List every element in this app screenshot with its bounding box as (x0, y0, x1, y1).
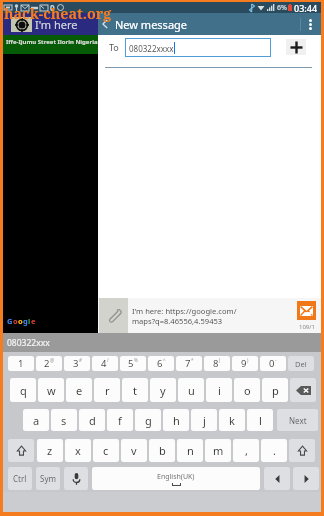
button[interactable]: 8 (204, 356, 230, 371)
button[interactable]: r (94, 378, 120, 402)
button[interactable]: English(UK) (92, 467, 260, 490)
button[interactable]: n (177, 439, 203, 462)
button[interactable]: h (163, 409, 189, 431)
staticText: G (7, 316, 13, 326)
button[interactable]: z (37, 439, 63, 462)
button[interactable]: Backspace (290, 378, 316, 402)
staticText: p (272, 383, 279, 398)
button[interactable]: o (234, 378, 260, 402)
staticText: Sym (40, 473, 56, 484)
button[interactable]: x (65, 439, 91, 462)
staticText: g (145, 413, 152, 428)
button[interactable]: Send (297, 301, 316, 320)
staticText: o (18, 316, 23, 326)
staticText: l (28, 316, 31, 326)
staticText: Del (295, 359, 307, 369)
staticText: ) (247, 357, 249, 363)
staticText: 109/1 (299, 323, 315, 331)
staticText: z (47, 443, 53, 458)
button[interactable]: 3 (64, 356, 90, 371)
staticText: 2 (44, 357, 50, 370)
button[interactable]: 1 (8, 356, 34, 371)
button[interactable]: c (93, 439, 119, 462)
staticText: - (275, 357, 277, 363)
button[interactable]: . (261, 439, 287, 462)
staticText: a (33, 413, 40, 428)
staticText: 0 (50, 2, 55, 13)
button[interactable]: s (51, 409, 77, 431)
button[interactable]: I'm here (3, 13, 98, 35)
button[interactable]: Ctrl (8, 467, 32, 490)
staticText: English(UK) (157, 472, 195, 482)
button[interactable]: Shift (8, 439, 34, 462)
staticText: maps?q=8.46556,4.59453 (132, 316, 223, 326)
staticText: , (245, 443, 248, 458)
staticText: q (20, 383, 27, 398)
button[interactable]: y (150, 378, 176, 402)
staticText: 080322xxxx (129, 43, 174, 54)
button[interactable]: b (149, 439, 175, 462)
button[interactable]: w (38, 378, 64, 402)
staticText: u (188, 383, 195, 398)
button[interactable]: q (10, 378, 36, 402)
button[interactable]: 6 (148, 356, 174, 371)
button[interactable]: , (233, 439, 259, 462)
button[interactable]: k (219, 409, 245, 431)
button[interactable]: Sym (36, 467, 60, 490)
staticText: g (23, 316, 28, 326)
staticText: 0 (269, 357, 275, 370)
staticText: f (118, 413, 122, 428)
staticText: v (131, 443, 137, 458)
staticText: e (31, 316, 36, 326)
button[interactable]: Voice input (64, 467, 88, 490)
staticText: 8 (213, 357, 219, 370)
staticText: * (191, 357, 194, 363)
button[interactable]: g (135, 409, 161, 431)
button[interactable]: l (247, 409, 273, 431)
button[interactable]: Previous (264, 467, 290, 490)
staticText: I'm here (35, 17, 78, 32)
staticText: e (76, 383, 83, 398)
staticText: To (109, 41, 119, 53)
staticText: 9 (241, 357, 247, 370)
button[interactable]: 0 (260, 356, 286, 371)
staticText: s (61, 413, 67, 428)
staticText: n (187, 443, 194, 458)
button[interactable]: 080322xxxx (125, 38, 271, 57)
button[interactable]: f (107, 409, 133, 431)
button[interactable]: m (205, 439, 231, 462)
button[interactable]: v (121, 439, 147, 462)
button[interactable]: Back (98, 13, 112, 35)
staticText: d (89, 413, 96, 428)
staticText: t (133, 383, 137, 398)
staticText: # (79, 357, 82, 363)
staticText: b (159, 443, 166, 458)
button[interactable]: i (206, 378, 232, 402)
button[interactable]: 7 (176, 356, 202, 371)
staticText: r (105, 383, 110, 398)
button[interactable]: d (79, 409, 105, 431)
staticText: . (273, 443, 276, 458)
button[interactable]: e (66, 378, 92, 402)
staticText: Iffe-Ijumu Street Ilorin Nigeria (6, 38, 98, 46)
button[interactable]: Attach (99, 298, 128, 333)
button[interactable]: 9 (232, 356, 258, 371)
button[interactable]: Del (288, 356, 314, 371)
button[interactable]: More options (301, 13, 319, 35)
button[interactable]: Shift (289, 439, 315, 462)
staticText: i (218, 383, 221, 398)
button[interactable]: a (23, 409, 49, 431)
button[interactable]: Next (277, 409, 318, 431)
button[interactable]: 4 (92, 356, 118, 371)
button[interactable]: p (262, 378, 288, 402)
staticText: 1 (18, 357, 24, 370)
staticText: Ctrl (13, 473, 27, 484)
button[interactable]: Next (293, 467, 319, 490)
staticText: ( (219, 357, 221, 363)
button[interactable]: 2 (36, 356, 62, 371)
button[interactable]: 5 (120, 356, 146, 371)
button[interactable]: j (191, 409, 217, 431)
button[interactable]: u (178, 378, 204, 402)
button[interactable]: t (122, 378, 148, 402)
button[interactable]: Add recipient (286, 39, 306, 55)
